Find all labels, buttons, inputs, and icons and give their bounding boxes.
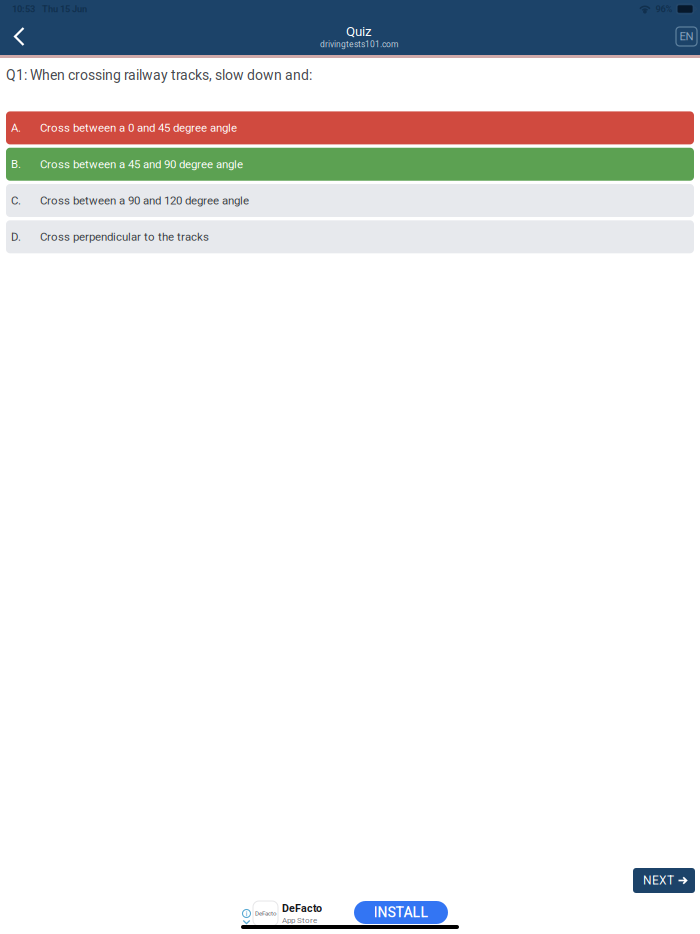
staticText: 10:53 xyxy=(12,3,35,14)
staticText: i xyxy=(245,909,247,918)
staticText: Q1: When crossing railway tracks, slow d… xyxy=(6,67,312,83)
staticText: DeFacto xyxy=(282,902,322,914)
staticText: Quiz xyxy=(346,24,372,39)
button[interactable]: Back xyxy=(0,19,38,54)
staticText: B. xyxy=(11,158,21,171)
button[interactable]: C. xyxy=(6,184,694,217)
button[interactable]: D. xyxy=(6,220,694,253)
staticText: Cross between a 0 and 45 degree angle xyxy=(40,121,237,135)
staticText: Cross between a 90 and 120 degree angle xyxy=(40,194,249,207)
staticText: Thu 15 Jun xyxy=(42,3,87,14)
staticText: App Store xyxy=(282,915,317,925)
staticText: EN xyxy=(679,30,693,43)
staticText: Cross perpendicular to the tracks xyxy=(40,230,209,243)
staticText: D. xyxy=(11,230,21,243)
staticText: C. xyxy=(11,194,21,207)
staticText: NEXT xyxy=(643,873,674,888)
staticText: 96% xyxy=(655,3,672,14)
staticText: INSTALL xyxy=(373,904,428,921)
staticText: A. xyxy=(11,121,21,135)
button[interactable]: B. xyxy=(6,148,694,181)
button[interactable]: EN xyxy=(676,19,700,54)
staticText: DeFacto xyxy=(255,910,276,917)
button[interactable]: A. xyxy=(6,111,694,144)
staticText: drivingtests101.com xyxy=(320,39,398,49)
button[interactable]: INSTALL xyxy=(354,901,448,924)
staticText: Cross between a 45 and 90 degree angle xyxy=(40,157,243,171)
button[interactable]: NEXT xyxy=(633,868,695,893)
